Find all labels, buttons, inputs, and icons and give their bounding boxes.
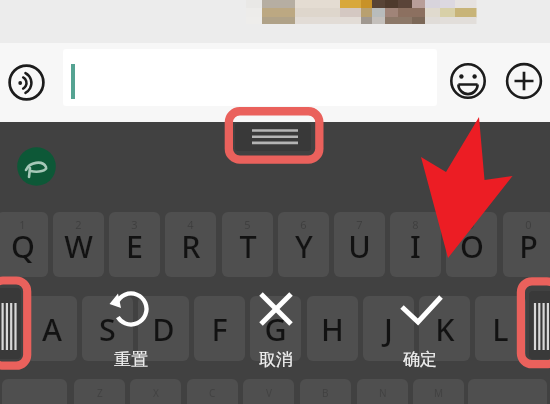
button[interactable]: Input method bbox=[15, 145, 58, 188]
staticText: U bbox=[348, 225, 371, 267]
staticText: Y bbox=[295, 225, 313, 267]
button[interactable]: 确定 bbox=[375, 288, 465, 368]
staticText: P bbox=[519, 225, 538, 267]
staticText: X bbox=[153, 386, 159, 400]
staticText: O bbox=[460, 225, 484, 267]
staticText: I bbox=[410, 225, 421, 267]
button[interactable]: F bbox=[194, 296, 245, 361]
button[interactable]: 3 bbox=[109, 212, 160, 277]
staticText: Q bbox=[11, 225, 35, 267]
staticText: F bbox=[211, 308, 228, 350]
button[interactable]: 1 bbox=[0, 212, 48, 277]
staticText: S bbox=[99, 308, 116, 350]
button[interactable]: 6 bbox=[278, 212, 329, 277]
staticText: W bbox=[64, 225, 93, 267]
staticText: 3 bbox=[131, 217, 138, 232]
staticText: L bbox=[492, 308, 509, 350]
button[interactable]: Emoji bbox=[446, 59, 490, 103]
staticText: M bbox=[434, 386, 444, 400]
staticText: 9 bbox=[468, 217, 475, 232]
staticText: 4 bbox=[187, 217, 194, 232]
staticText: E bbox=[126, 225, 143, 267]
button[interactable]: 重置 bbox=[86, 288, 176, 368]
button[interactable]: D bbox=[138, 296, 189, 361]
staticText: 确定 bbox=[403, 349, 437, 370]
staticText: 8 bbox=[412, 217, 419, 232]
button[interactable]: 8 bbox=[390, 212, 441, 277]
button[interactable]: L bbox=[475, 296, 526, 361]
staticText: 0 bbox=[525, 217, 532, 232]
button[interactable]: S bbox=[82, 296, 133, 361]
staticText: 取消 bbox=[259, 349, 293, 370]
staticText: 6 bbox=[300, 217, 307, 232]
staticText: G bbox=[264, 308, 287, 350]
button[interactable]: Keyboard height handle bbox=[235, 123, 311, 151]
button[interactable]: 5 bbox=[222, 212, 273, 277]
button[interactable]: 2 bbox=[53, 212, 104, 277]
staticText: N bbox=[379, 386, 387, 400]
button[interactable]: More bbox=[502, 59, 546, 103]
button[interactable]: Resize keyboard left bbox=[0, 288, 21, 359]
button[interactable]: Resize keyboard right bbox=[529, 291, 550, 359]
button[interactable]: Voice input bbox=[4, 60, 49, 105]
staticText: A bbox=[42, 308, 62, 350]
button[interactable]: A bbox=[26, 296, 77, 361]
staticText: T bbox=[239, 225, 257, 267]
staticText: B bbox=[322, 386, 329, 400]
staticText: 5 bbox=[244, 217, 251, 232]
button[interactable]: 0 bbox=[503, 212, 550, 277]
staticText: D bbox=[152, 308, 175, 350]
button[interactable]: H bbox=[307, 296, 358, 361]
button[interactable]: K bbox=[419, 296, 470, 361]
button[interactable]: 4 bbox=[165, 212, 216, 277]
staticText: V bbox=[266, 386, 272, 400]
staticText: J bbox=[384, 308, 393, 350]
button[interactable]: J bbox=[363, 296, 414, 361]
button[interactable]: 9 bbox=[446, 212, 497, 277]
button[interactable]: 取消 bbox=[231, 288, 321, 368]
staticText: 重置 bbox=[114, 349, 148, 370]
staticText: 1 bbox=[19, 217, 26, 232]
staticText: Z bbox=[97, 386, 103, 400]
staticText: H bbox=[321, 308, 344, 350]
button[interactable]: 7 bbox=[334, 212, 385, 277]
staticText: C bbox=[209, 386, 216, 400]
button[interactable] bbox=[63, 49, 437, 106]
button[interactable]: G bbox=[250, 296, 301, 361]
staticText: R bbox=[181, 225, 201, 267]
staticText: K bbox=[435, 308, 455, 350]
staticText: 7 bbox=[356, 217, 363, 232]
staticText: 2 bbox=[75, 217, 82, 232]
